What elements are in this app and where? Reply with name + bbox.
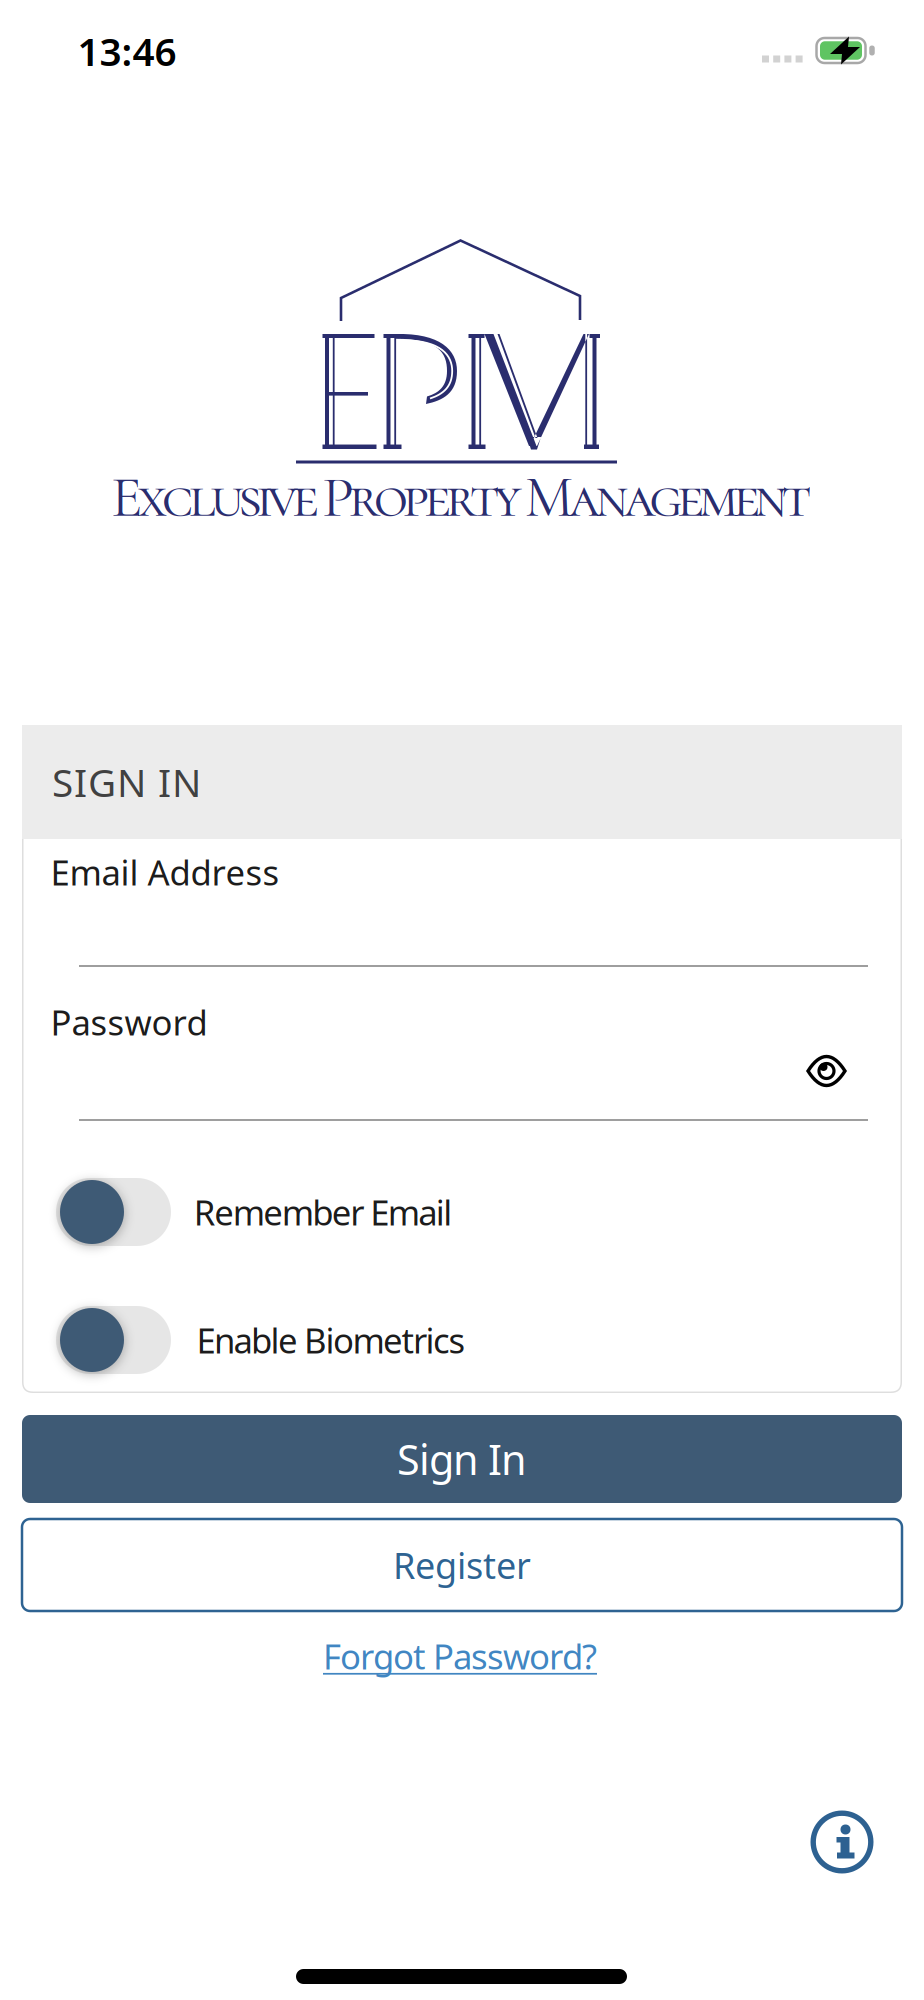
staticText: Sign In — [397, 1432, 527, 1486]
button[interactable]: Register — [22, 1519, 902, 1611]
button[interactable]: Remember Email — [56, 1178, 171, 1246]
staticText: Register — [393, 1541, 531, 1589]
staticText: Remember Email — [194, 1189, 452, 1235]
staticText: 13:46 — [77, 25, 176, 77]
button[interactable]: Email Address — [39, 855, 885, 969]
staticText: Enable Biometrics — [196, 1317, 465, 1363]
staticText: Email Address — [50, 849, 279, 895]
button[interactable]: Show Password — [794, 1041, 858, 1101]
button[interactable]: Sign In — [22, 1415, 902, 1503]
staticText: SIGN IN — [52, 756, 201, 808]
button[interactable]: Enable Biometrics — [56, 1306, 171, 1374]
button[interactable]: Forgot Password? — [323, 1633, 597, 1679]
staticText: Exclusive Property Management — [111, 461, 811, 532]
staticText: Forgot Password? — [323, 1633, 597, 1679]
button[interactable]: Password — [39, 996, 885, 1124]
staticText: Password — [50, 999, 207, 1045]
button[interactable]: Info — [807, 1807, 877, 1877]
